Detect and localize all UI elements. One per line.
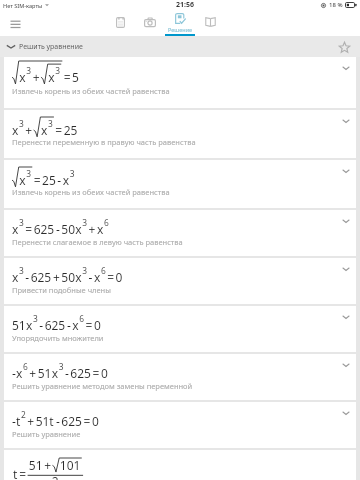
button[interactable] — [4, 306, 356, 352]
staticText: Перенести слагаемое в левую часть равенс… — [12, 237, 183, 247]
button[interactable] — [4, 110, 356, 158]
button[interactable] — [4, 160, 356, 208]
button[interactable]: Развернуть — [340, 407, 351, 418]
button[interactable]: Развернуть — [340, 62, 351, 73]
staticText: Решение — [168, 26, 193, 33]
staticText: Решить уравнение — [12, 429, 81, 439]
button[interactable] — [4, 450, 356, 480]
staticText: 21:56 — [176, 0, 194, 10]
button[interactable]: Камера — [135, 13, 165, 36]
button[interactable]: Добавить в избранное — [336, 39, 352, 55]
staticText: Решить уравнение — [19, 42, 83, 52]
button[interactable]: Развернуть — [340, 359, 351, 370]
button[interactable]: Клавиатура — [105, 13, 135, 36]
staticText: Извлечь корень из обеих частей равенства — [12, 187, 170, 197]
staticText: Упорядочить множители — [12, 333, 104, 343]
staticText: Привести подобные члены — [12, 285, 111, 295]
button[interactable]: Решение — [165, 13, 195, 36]
button[interactable] — [4, 57, 356, 108]
button[interactable] — [4, 402, 356, 448]
staticText: Нет SIM-карты — [3, 2, 43, 9]
button[interactable] — [4, 354, 356, 400]
button[interactable]: Развернуть — [340, 165, 351, 176]
staticText: Решить уравнение методом замены переменн… — [12, 381, 193, 391]
button[interactable] — [4, 210, 356, 256]
button[interactable]: Развернуть — [340, 263, 351, 274]
staticText: Извлечь корень из обеих частей равенства — [12, 86, 170, 96]
button[interactable]: Развернуть — [340, 115, 351, 126]
button[interactable] — [4, 258, 356, 304]
button[interactable]: Книга — [195, 13, 225, 36]
staticText: Перенести переменную в правую часть раве… — [12, 137, 196, 147]
staticText: 18 % — [329, 1, 343, 9]
button[interactable]: Меню — [3, 13, 27, 36]
button[interactable]: Решить уравнение — [0, 36, 360, 57]
button[interactable]: Развернуть — [340, 215, 351, 226]
button[interactable]: Развернуть — [340, 311, 351, 322]
